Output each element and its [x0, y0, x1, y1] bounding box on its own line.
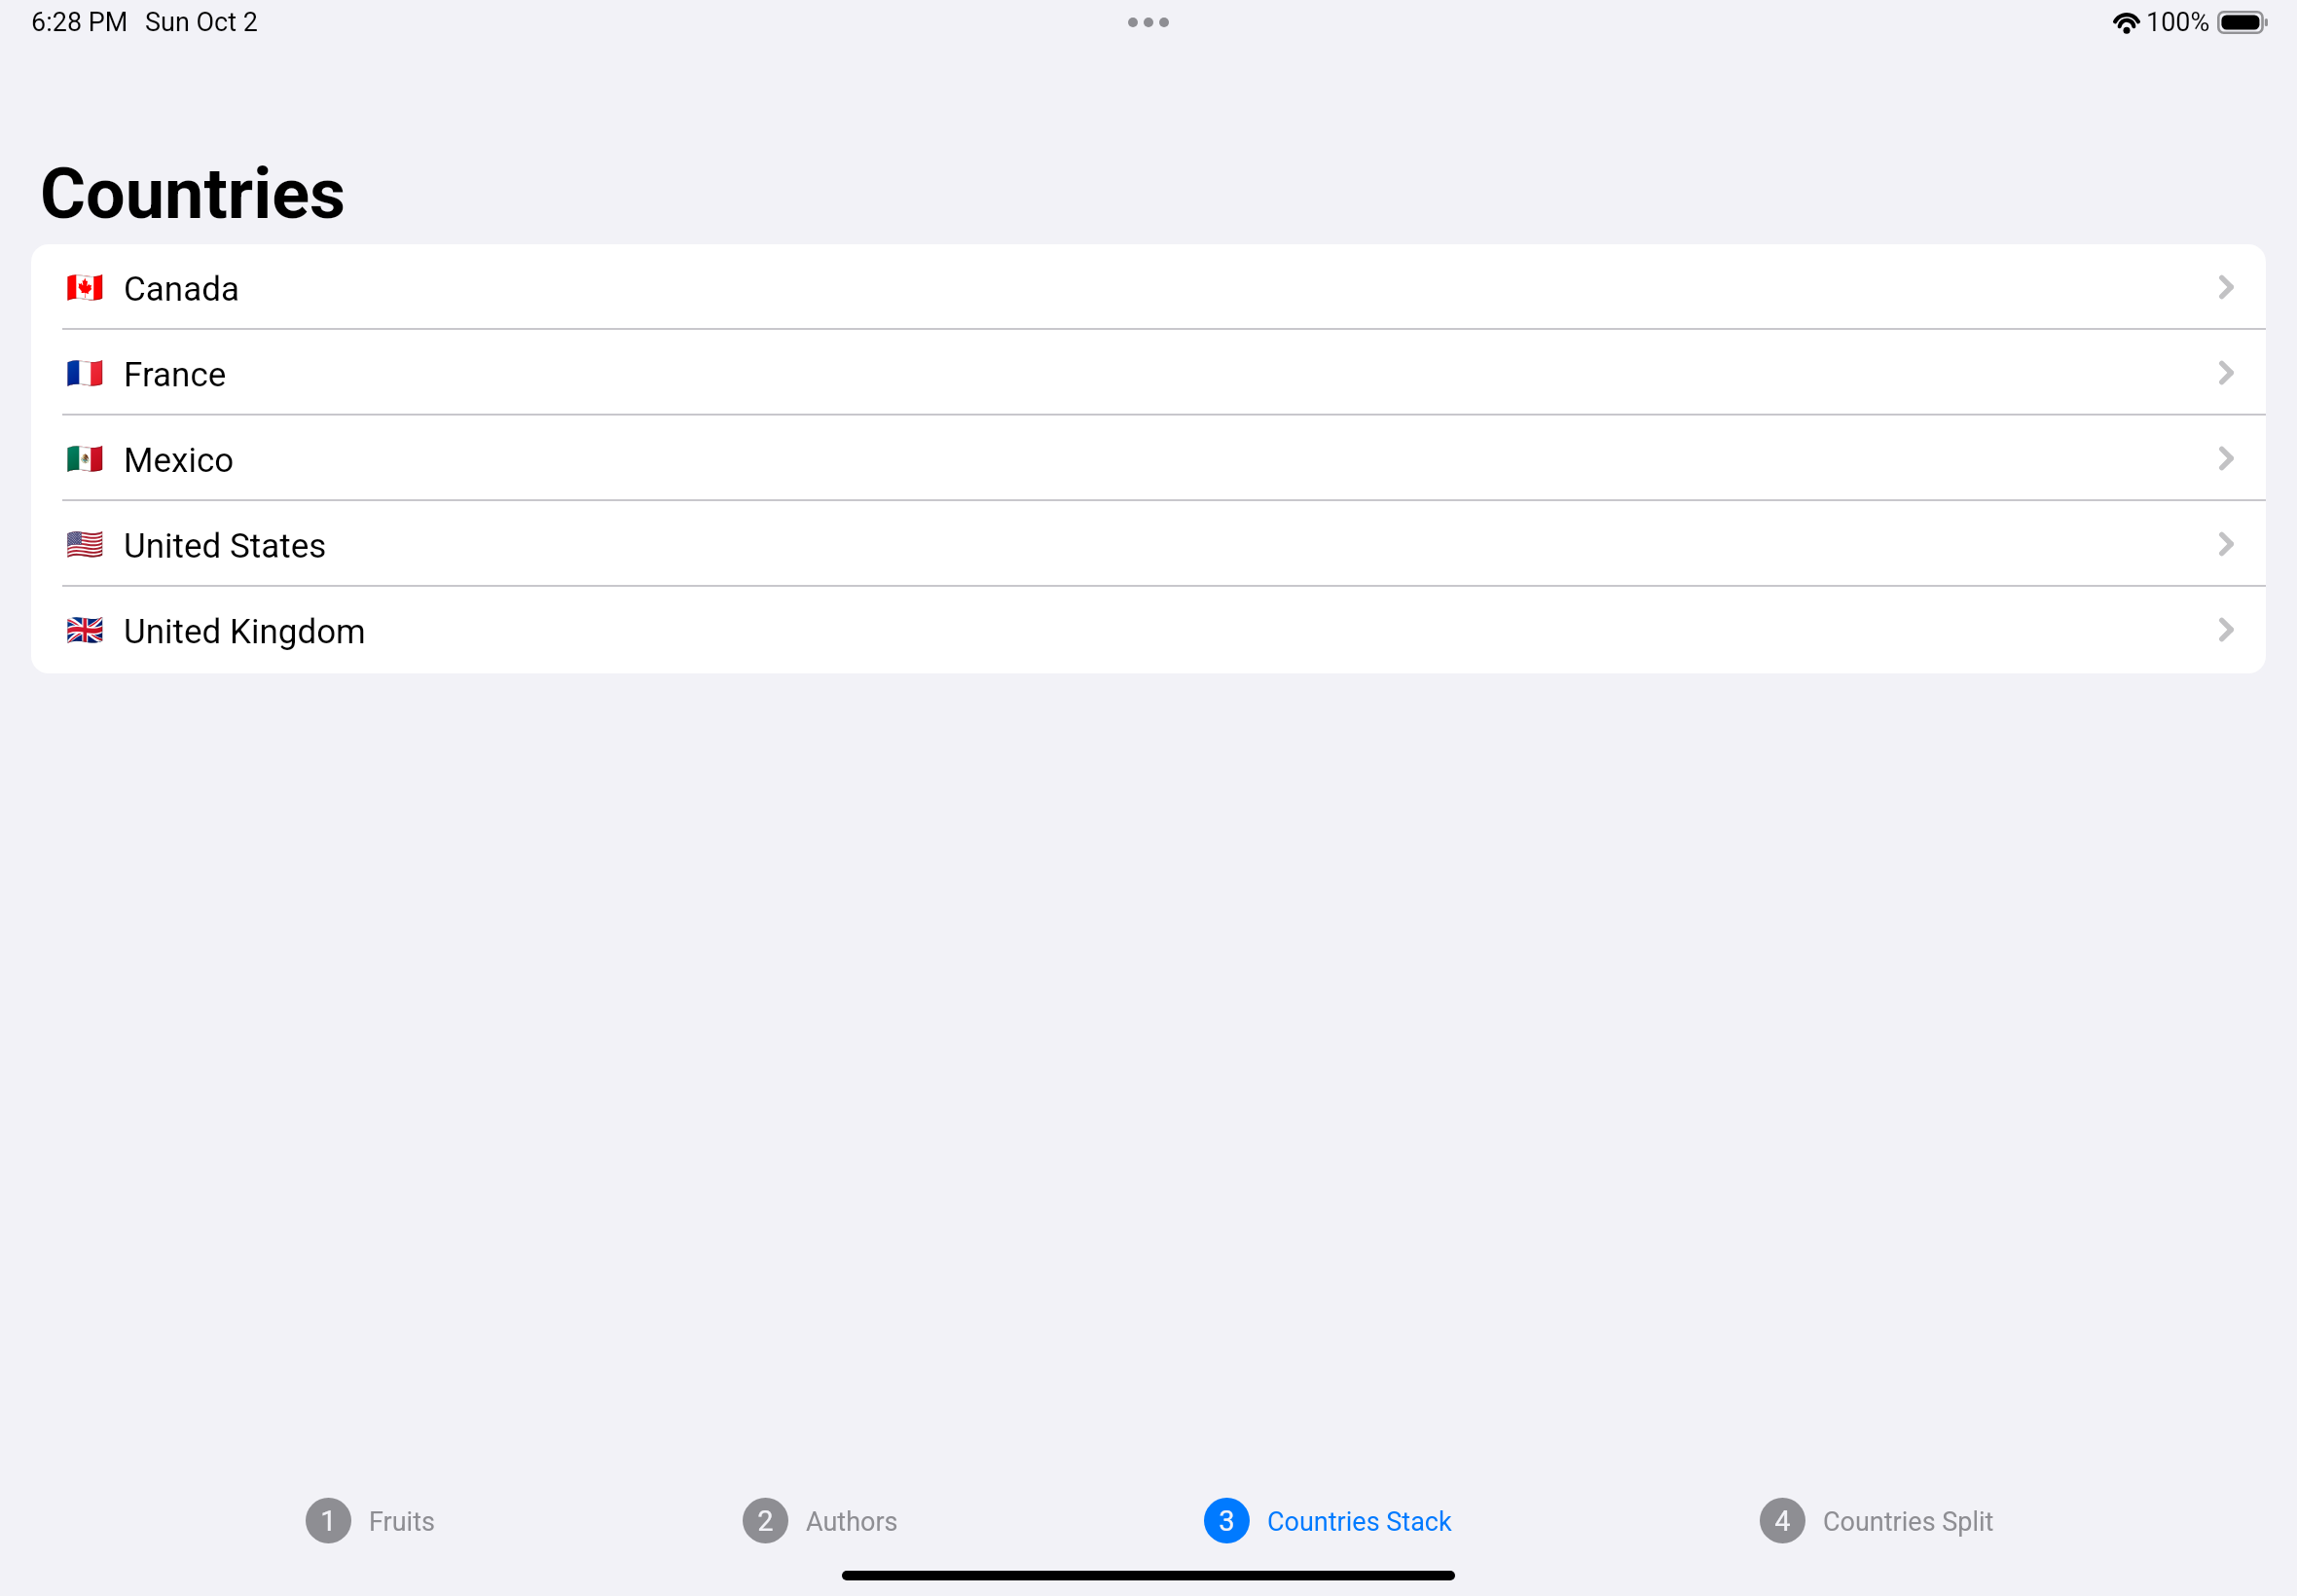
staticText: France — [124, 355, 227, 395]
staticText: Mexico — [124, 441, 235, 481]
button[interactable]: 3 — [1204, 1491, 1452, 1549]
staticText: Authors — [806, 1506, 898, 1538]
staticText: 6:28 PM — [31, 7, 128, 38]
staticText: 3 — [1219, 1505, 1235, 1538]
staticText: Countries Split — [1823, 1506, 1994, 1538]
button[interactable]: 🇺🇸 — [31, 501, 2266, 587]
other: Open — [2219, 360, 2234, 385]
other: Open — [2219, 274, 2234, 300]
staticText: 2 — [757, 1505, 774, 1538]
staticText: Countries Stack — [1267, 1506, 1452, 1538]
staticText: 4 — [1774, 1505, 1791, 1538]
other: Open — [2219, 531, 2234, 557]
other: Open — [2219, 617, 2234, 642]
staticText: United Kingdom — [124, 612, 366, 652]
staticText: 🇬🇧 — [66, 612, 101, 647]
button[interactable]: 🇨🇦 — [31, 244, 2266, 330]
staticText: 🇲🇽 — [66, 441, 101, 476]
staticText: 1 — [320, 1505, 337, 1538]
staticText: 🇨🇦 — [66, 270, 101, 305]
button[interactable]: 4 — [1760, 1491, 1994, 1549]
button[interactable]: 🇲🇽 — [31, 416, 2266, 501]
button[interactable]: 2 — [743, 1491, 898, 1549]
button[interactable]: 🇫🇷 — [31, 330, 2266, 416]
other: Battery — [2217, 11, 2268, 34]
button[interactable]: 🇬🇧 — [31, 587, 2266, 672]
staticText: United States — [124, 526, 327, 566]
staticText: Canada — [124, 270, 239, 309]
other: Wi-Fi — [2113, 13, 2140, 33]
button[interactable]: 1 — [306, 1491, 435, 1549]
staticText: Sun Oct 2 — [145, 7, 258, 38]
staticText: 🇫🇷 — [66, 355, 101, 390]
staticText: Fruits — [369, 1506, 435, 1538]
staticText: 🇺🇸 — [66, 526, 101, 562]
staticText: Countries — [40, 153, 346, 235]
staticText: 100% — [2146, 7, 2210, 38]
other: Open — [2219, 446, 2234, 471]
